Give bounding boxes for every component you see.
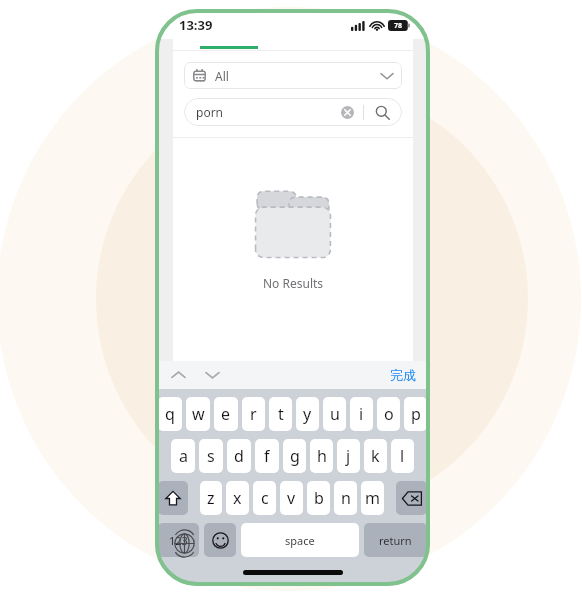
staticText: e	[221, 403, 231, 425]
button[interactable]: q	[158, 397, 182, 431]
staticText: All	[215, 68, 229, 84]
button[interactable]: 完成	[390, 367, 416, 383]
button[interactable]: g	[283, 439, 306, 473]
button[interactable]: m	[361, 481, 384, 515]
staticText: b	[314, 487, 324, 509]
staticText: a	[179, 445, 188, 467]
button[interactable]: d	[227, 439, 251, 473]
staticText: 完成	[390, 367, 416, 383]
staticText: f	[264, 445, 270, 467]
button[interactable]: j	[337, 439, 360, 473]
staticText: No Results	[263, 275, 324, 291]
button[interactable]: p	[404, 397, 427, 431]
button[interactable]: porn	[184, 98, 402, 126]
button[interactable]: Clear search	[337, 102, 357, 122]
button[interactable]: All	[184, 62, 402, 89]
staticText: l	[400, 445, 405, 467]
button[interactable]: u	[323, 397, 346, 431]
staticText: porn	[196, 104, 224, 120]
button[interactable]: c	[253, 481, 276, 515]
button[interactable]: Change keyboard language	[169, 528, 199, 558]
staticText: 123	[169, 533, 188, 548]
staticText: w	[192, 403, 205, 425]
button[interactable]: 123	[158, 523, 199, 557]
staticText: 78	[394, 21, 403, 31]
staticText: x	[233, 487, 242, 509]
button[interactable]: b	[307, 481, 330, 515]
staticText: h	[317, 445, 327, 467]
staticText: i	[359, 403, 364, 425]
staticText: q	[165, 403, 175, 425]
staticText: n	[341, 487, 351, 509]
button[interactable]: x	[226, 481, 249, 515]
button[interactable]: s	[199, 439, 223, 473]
button[interactable]: i	[350, 397, 373, 431]
staticText: v	[287, 487, 296, 509]
button[interactable]: Emoji	[204, 523, 236, 557]
staticText: o	[384, 403, 394, 425]
button[interactable]: k	[364, 439, 387, 473]
button[interactable]: n	[334, 481, 357, 515]
staticText: m	[365, 487, 380, 509]
button[interactable]: e	[214, 397, 238, 431]
button[interactable]: Previous field	[165, 362, 191, 388]
staticText: g	[290, 445, 300, 467]
button[interactable]: y	[296, 397, 319, 431]
button[interactable]: w	[186, 397, 210, 431]
button[interactable]: v	[280, 481, 303, 515]
button[interactable]: return	[364, 523, 427, 557]
button[interactable]: r	[242, 397, 265, 431]
button[interactable]: space	[241, 523, 359, 557]
staticText: return	[379, 533, 412, 548]
button[interactable]: f	[255, 439, 279, 473]
button[interactable]: o	[377, 397, 400, 431]
staticText: space	[285, 533, 315, 548]
staticText: z	[207, 487, 215, 509]
staticText: s	[207, 445, 215, 467]
button[interactable]: h	[310, 439, 333, 473]
staticText: 13:39	[179, 16, 213, 34]
button[interactable]: Search	[372, 102, 392, 122]
button[interactable]: Delete	[396, 481, 427, 515]
staticText: k	[371, 445, 380, 467]
staticText: j	[346, 445, 351, 467]
staticText: y	[303, 403, 312, 425]
staticText: u	[330, 403, 340, 425]
button[interactable]: z	[200, 481, 222, 515]
button[interactable]: l	[391, 439, 414, 473]
button[interactable]: Shift	[158, 481, 188, 515]
staticText: t	[278, 403, 284, 425]
staticText: r	[250, 403, 257, 425]
staticText: p	[411, 403, 421, 425]
button[interactable]: a	[171, 439, 195, 473]
staticText: d	[234, 445, 244, 467]
button[interactable]: t	[269, 397, 292, 431]
button[interactable]: Next field	[199, 362, 225, 388]
staticText: c	[261, 487, 269, 509]
